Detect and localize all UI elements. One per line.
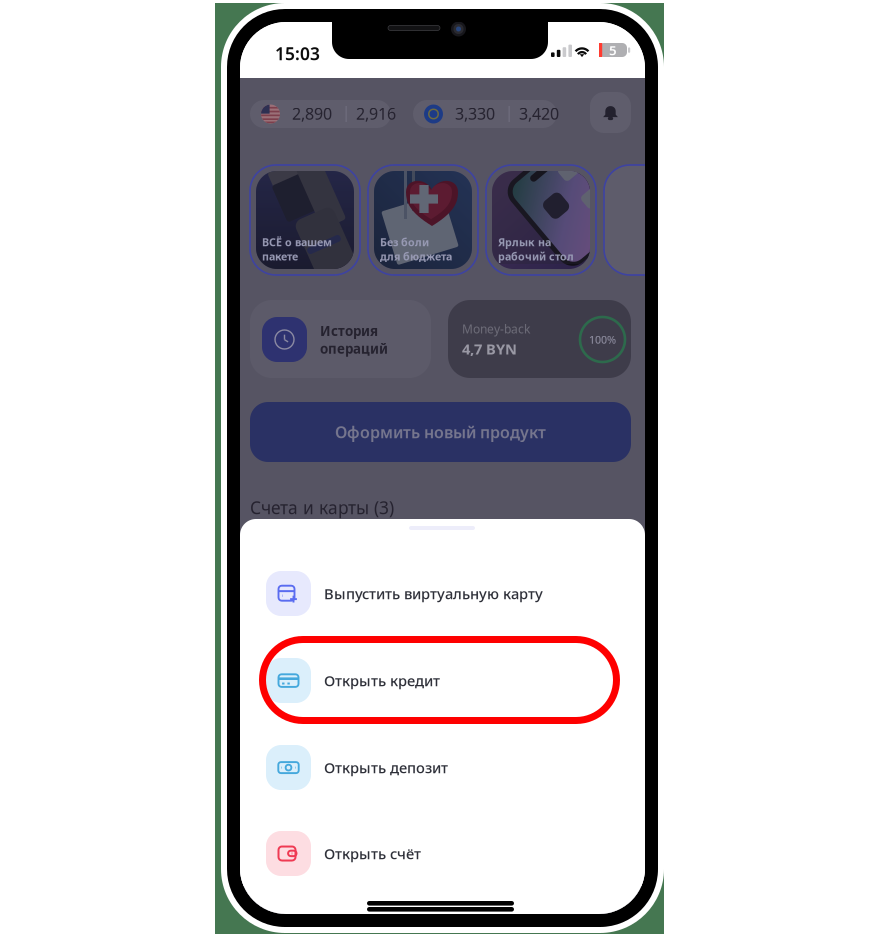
button[interactable]: Выпустить виртуальную карту — [240, 560, 645, 626]
staticText: Открыть депозит — [324, 758, 448, 777]
staticText: 2,916 — [356, 103, 396, 124]
staticText: 100% — [589, 332, 616, 347]
button[interactable]: История операций — [250, 300, 431, 378]
staticText: 4,7 BYN — [462, 339, 517, 358]
button[interactable]: Оформить новый продукт — [250, 402, 631, 462]
button[interactable]: 3,330 — [413, 100, 557, 128]
staticText: 3,330 — [455, 103, 495, 124]
staticText: Без боли для бюджета — [380, 235, 452, 263]
staticText: Открыть кредит — [324, 671, 440, 690]
staticText: Счета и карты (3) — [250, 496, 394, 519]
button[interactable]: Money-back — [448, 300, 631, 378]
staticText: 2,890 — [292, 103, 332, 124]
staticText: Ярлык на рабочий стол — [498, 235, 574, 263]
staticText: 3,420 — [519, 103, 559, 124]
button[interactable]: Открыть счёт — [240, 820, 645, 886]
staticText: Money-back — [462, 321, 530, 337]
staticText: Выпустить виртуальную карту — [324, 584, 543, 603]
button[interactable]: 2,890 — [250, 100, 391, 128]
button[interactable]: Открыть кредит — [240, 647, 645, 713]
staticText: ВСЁ о вашем пакете — [262, 235, 332, 263]
staticText: Открыть счёт — [324, 844, 421, 863]
staticText: 5 — [609, 41, 617, 59]
staticText: Оформить новый продукт — [335, 421, 546, 443]
button[interactable]: Без боли для бюджета — [368, 165, 478, 275]
button[interactable]: Ярлык на рабочий стол — [486, 165, 596, 275]
button[interactable]: ВСЁ о вашем пакете — [250, 165, 360, 275]
staticText: 15:03 — [275, 42, 320, 65]
staticText: История операций — [320, 322, 388, 357]
button[interactable]: Открыть депозит — [240, 734, 645, 800]
button[interactable]: Уведомления — [590, 92, 631, 133]
